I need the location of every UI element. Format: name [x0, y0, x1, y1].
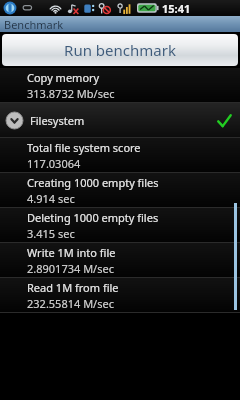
staticText: Benchmark	[4, 17, 64, 32]
staticText: 2.8901734 M/sec	[27, 261, 114, 276]
staticText: 313.8732 Mb/sec	[27, 86, 115, 101]
button[interactable]: Total file system score	[0, 138, 240, 172]
button[interactable]: Write 1M into file	[0, 243, 240, 277]
staticText: 15:41	[162, 1, 191, 16]
staticText: Read 1M from file	[27, 280, 119, 295]
staticText: 4.914 sec	[27, 191, 75, 206]
other: Completed	[216, 113, 232, 129]
button[interactable]: Run benchmark	[2, 34, 238, 66]
other: Collapse Filesystem	[6, 112, 23, 129]
button[interactable]: Collapse Filesystem	[0, 103, 240, 137]
staticText: 117.03064	[27, 156, 81, 171]
button[interactable]: Deleting 1000 empty files	[0, 208, 240, 242]
staticText: Total file system score	[27, 140, 141, 155]
staticText: Creating 1000 empty files	[27, 175, 159, 190]
staticText: Run benchmark	[64, 40, 176, 60]
staticText: Write 1M into file	[27, 245, 116, 260]
staticText: Filesystem	[30, 113, 85, 128]
staticText: Copy memory	[27, 70, 100, 85]
staticText: 3.415 sec	[27, 226, 75, 241]
button[interactable]: Creating 1000 empty files	[0, 173, 240, 207]
staticText: 232.55814 M/sec	[27, 296, 114, 311]
button[interactable]: Read 1M from file	[0, 278, 240, 312]
staticText: Deleting 1000 empty files	[27, 210, 159, 225]
button[interactable]: Copy memory	[0, 68, 240, 102]
